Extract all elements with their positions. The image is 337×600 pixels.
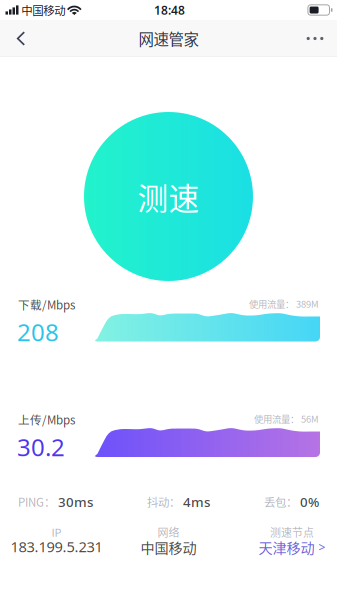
staticText: 208 bbox=[17, 316, 59, 348]
staticText: 网速管家 bbox=[138, 27, 198, 50]
staticText: 抖动： bbox=[147, 494, 180, 510]
staticText: 测速节点 bbox=[270, 524, 314, 540]
staticText: 4ms bbox=[183, 493, 210, 511]
button[interactable]: Back bbox=[0, 20, 42, 57]
staticText: 测速 bbox=[137, 174, 199, 219]
button[interactable]: 测速节点 bbox=[236, 524, 337, 557]
staticText: 中国移动 bbox=[140, 537, 196, 557]
staticText: 丢包： bbox=[264, 494, 297, 510]
staticText: 使用流量： 56M bbox=[254, 412, 319, 425]
staticText: 上传/Mbps bbox=[18, 411, 75, 428]
button[interactable]: More options bbox=[293, 20, 337, 57]
staticText: 0% bbox=[300, 493, 319, 511]
staticText: 下载/Mbps bbox=[18, 296, 75, 313]
staticText: 18:48 bbox=[154, 2, 185, 18]
staticText: > bbox=[318, 539, 325, 555]
staticText: 网络 bbox=[157, 524, 179, 540]
staticText: 天津移动 bbox=[258, 537, 314, 557]
staticText: 使用流量： 389M bbox=[249, 297, 319, 310]
staticText: 中国移动 bbox=[21, 2, 65, 18]
staticText: 30.2 bbox=[17, 431, 65, 463]
button[interactable]: 测速 bbox=[84, 112, 253, 281]
staticText: 30ms bbox=[58, 493, 93, 511]
staticText: IP bbox=[51, 524, 61, 540]
staticText: 183.199.5.231 bbox=[10, 537, 102, 556]
staticText: PING： bbox=[18, 494, 55, 510]
